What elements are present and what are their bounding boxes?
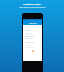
staticText: New note: [29, 22, 37, 24]
button[interactable]: [25, 41, 42, 43]
staticText: Meeting notes: [23, 2, 41, 5]
staticText: Capture ideas, share with the team: [19, 6, 46, 8]
